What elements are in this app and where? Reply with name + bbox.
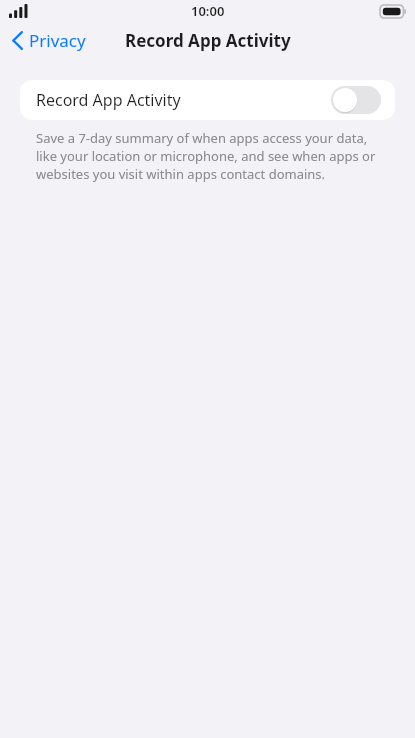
other: Back bbox=[12, 31, 23, 50]
staticText: Save a 7-day summary of when apps access… bbox=[36, 129, 385, 183]
staticText: 10:00 bbox=[191, 2, 225, 20]
button[interactable]: Record App Activity bbox=[20, 80, 395, 120]
staticText: Privacy bbox=[29, 29, 86, 52]
staticText: Record App Activity bbox=[36, 89, 181, 111]
staticText: Record App Activity bbox=[125, 29, 291, 52]
button[interactable]: Record App Activity toggle, off bbox=[331, 86, 381, 114]
button[interactable]: Back bbox=[0, 25, 96, 56]
